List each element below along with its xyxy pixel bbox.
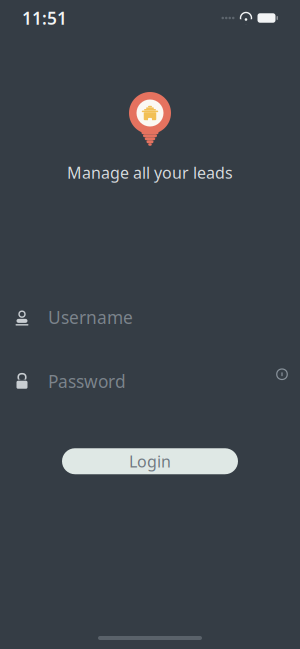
staticText: Username <box>48 306 133 329</box>
button[interactable]: Password <box>0 366 300 396</box>
button[interactable]: Help <box>270 362 294 386</box>
staticText: Password <box>48 370 126 393</box>
staticText: 11:51 <box>22 6 67 29</box>
staticText: Login <box>129 451 171 472</box>
button[interactable]: Login <box>62 448 238 474</box>
staticText: Manage all your leads <box>67 162 233 183</box>
button[interactable]: Username <box>0 302 300 332</box>
